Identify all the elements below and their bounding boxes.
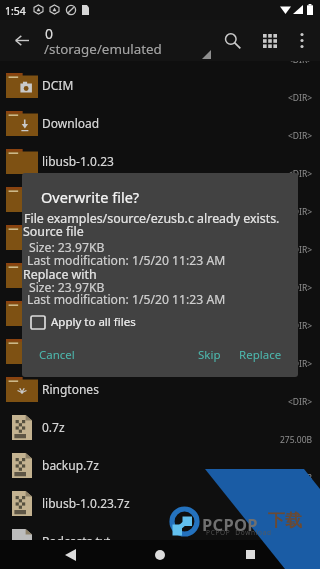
staticText: <DIR> xyxy=(288,244,313,256)
button[interactable]: Movies xyxy=(0,180,320,218)
staticText: <DIR> xyxy=(288,92,313,104)
staticText: Notifications xyxy=(42,267,114,283)
staticText: Skip xyxy=(198,347,221,363)
button[interactable]: Notifications xyxy=(0,256,320,294)
button[interactable]: DCIM xyxy=(0,66,320,104)
staticText: 3.45MB xyxy=(282,472,313,484)
staticText: Music xyxy=(42,229,75,245)
staticText: <DIR> xyxy=(288,320,313,332)
button[interactable]: Cancel xyxy=(31,343,83,367)
button[interactable]: Download xyxy=(0,104,320,142)
staticText: Replace xyxy=(239,347,282,363)
staticText: Alarms xyxy=(42,39,82,55)
staticText: Podcasts xyxy=(42,343,93,359)
button[interactable]: 0.7z xyxy=(0,408,320,446)
button[interactable]: Home xyxy=(140,540,180,569)
staticText: Size: 23.97KB xyxy=(29,279,105,296)
staticText: 275.00B xyxy=(280,434,313,446)
staticText: Overwrite file? xyxy=(41,187,140,207)
staticText: libusb-1.0.23 xyxy=(42,153,114,169)
staticText: Last modification: 1/5/20 11:23 AM xyxy=(27,252,226,269)
button[interactable]: Skip xyxy=(190,343,229,367)
button[interactable]: Podcasts xyxy=(0,332,320,370)
button[interactable]: Back xyxy=(3,20,41,61)
button[interactable]: backup.7z xyxy=(0,446,320,484)
button[interactable]: More options xyxy=(288,20,316,61)
button[interactable]: Replace xyxy=(231,343,290,367)
staticText: Pictures xyxy=(42,305,88,321)
staticText: Podcasts.txt xyxy=(42,533,111,549)
button[interactable]: Alarms xyxy=(0,28,320,66)
staticText: PCPOP Download xyxy=(206,528,272,537)
button[interactable]: Grid view xyxy=(252,20,288,61)
staticText: Apply to all files xyxy=(51,314,136,330)
staticText: Size: 23.97KB xyxy=(29,239,105,256)
staticText: 1:54 xyxy=(5,4,26,18)
staticText: Ringtones xyxy=(42,381,99,397)
button[interactable]: Music xyxy=(0,218,320,256)
staticText: /storage/emulated xyxy=(44,40,162,58)
staticText: Cancel xyxy=(39,347,75,363)
staticText: 0 xyxy=(45,24,54,43)
staticText: Last modification: 1/5/20 11:23 AM xyxy=(27,291,226,308)
staticText: <DIR> xyxy=(288,396,313,408)
button[interactable]: Apply to all files xyxy=(28,311,139,333)
staticText: <DIR> xyxy=(288,358,313,370)
staticText: Movies xyxy=(42,191,82,207)
staticText: <DIR> xyxy=(288,130,313,142)
staticText: DCIM xyxy=(42,77,74,93)
staticText: Download xyxy=(42,115,100,131)
button[interactable]: libusb-1.0.23.7z xyxy=(0,484,320,522)
staticText: PCPOP xyxy=(202,513,258,535)
staticText: 0.7z xyxy=(42,419,65,435)
button[interactable]: Search xyxy=(214,20,251,61)
button[interactable]: Recents xyxy=(230,540,270,569)
staticText: 下载 xyxy=(268,510,302,531)
staticText: libusb-1.0.23.7z xyxy=(42,495,130,511)
button[interactable]: Pictures xyxy=(0,294,320,332)
staticText: <DIR> xyxy=(288,168,313,180)
button[interactable]: Ringtones xyxy=(0,370,320,408)
button[interactable]: libusb-1.0.23 xyxy=(0,142,320,180)
staticText: File examples/source/ezusb.c already exi… xyxy=(24,210,280,227)
staticText: backup.7z xyxy=(42,457,99,473)
staticText: 1.20MB xyxy=(282,510,313,522)
button[interactable]: Podcasts.txt xyxy=(0,522,320,560)
staticText: Replace with xyxy=(23,266,97,283)
staticText: <DIR> xyxy=(288,206,313,218)
staticText: Source file xyxy=(23,223,84,240)
button[interactable]: Back xyxy=(50,540,90,569)
staticText: <DIR> xyxy=(288,282,313,294)
staticText: <DIR> xyxy=(288,54,313,66)
